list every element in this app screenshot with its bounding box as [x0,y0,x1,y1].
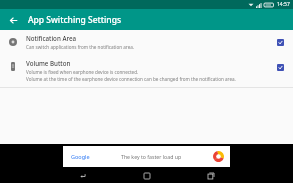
staticText: Volume is fixed when earphone device is … [26,69,139,75]
button[interactable]: Notification Area [0,30,293,55]
button[interactable]: Volume Button [0,55,293,87]
staticText: Volume at the time of the earphone devic… [26,76,236,82]
other: Ad icon [213,151,224,162]
button[interactable]: Home [129,169,165,183]
staticText: Volume Button [26,59,71,67]
staticText: 14:57 [277,1,290,8]
button[interactable]: Notification Area checkbox [274,36,287,49]
button[interactable]: Google [63,146,230,167]
staticText: Google [71,153,90,160]
staticText: Can switch applications from the notific… [26,44,135,50]
staticText: App Switching Settings [28,14,122,26]
staticText: The key to faster load up [121,153,182,160]
staticText: Notification Area [26,34,77,42]
button[interactable]: Recent apps [193,169,229,183]
button[interactable]: Back [65,169,101,183]
button[interactable]: Volume Button checkbox [274,61,287,74]
button[interactable]: Back [5,12,21,28]
